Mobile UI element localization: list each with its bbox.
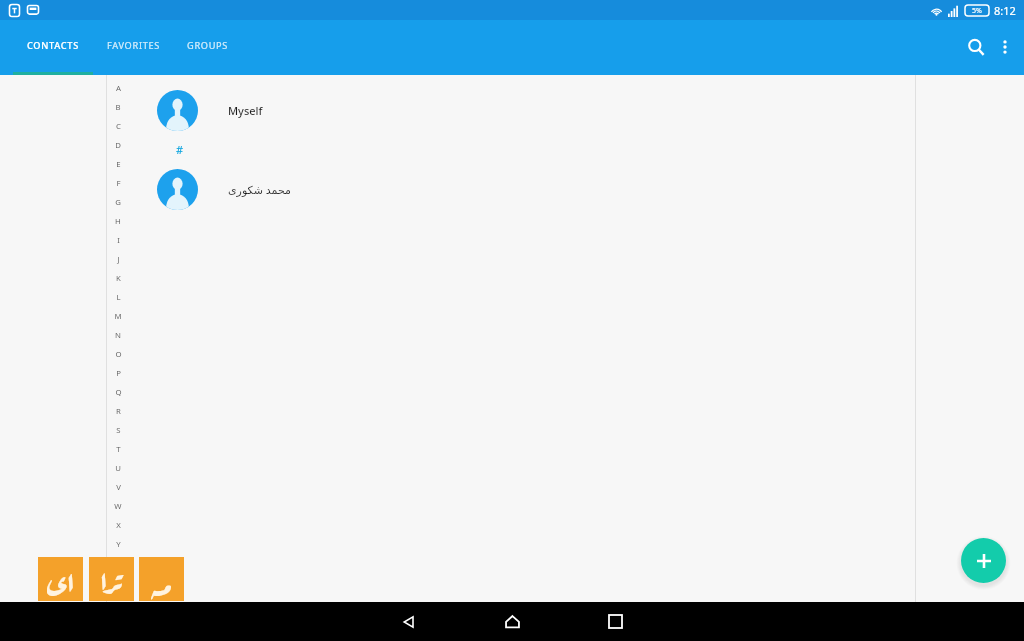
staticText: M bbox=[114, 311, 122, 322]
staticText: P bbox=[116, 368, 121, 379]
button[interactable]: S bbox=[110, 421, 126, 440]
staticText: O bbox=[115, 349, 122, 360]
button[interactable]: Q bbox=[110, 383, 126, 402]
button[interactable]: H bbox=[110, 212, 126, 231]
staticText: Q bbox=[115, 387, 122, 398]
staticText: K bbox=[116, 273, 121, 284]
staticText: ترا bbox=[100, 557, 123, 601]
button[interactable]: V bbox=[110, 478, 126, 497]
staticText: V bbox=[116, 482, 121, 493]
button[interactable]: J bbox=[110, 250, 126, 269]
button[interactable]: E bbox=[110, 155, 126, 174]
staticText: I bbox=[117, 235, 120, 246]
button[interactable]: R bbox=[110, 402, 126, 421]
staticText: FAVORITES bbox=[107, 39, 161, 52]
staticText: Myself bbox=[228, 103, 263, 118]
button[interactable]: X bbox=[110, 516, 126, 535]
button[interactable]: C bbox=[110, 117, 126, 136]
staticText: D bbox=[115, 140, 121, 151]
staticText: U bbox=[115, 463, 121, 474]
button[interactable]: FAVORITES bbox=[102, 20, 166, 75]
staticText: C bbox=[116, 121, 121, 132]
button[interactable]: Home bbox=[488, 602, 536, 641]
button[interactable]: W bbox=[110, 497, 126, 516]
button[interactable]: K bbox=[110, 269, 126, 288]
button[interactable]: T bbox=[110, 440, 126, 459]
button[interactable]: A bbox=[110, 79, 126, 98]
staticText: F bbox=[116, 178, 121, 189]
button[interactable]: Back bbox=[385, 602, 433, 641]
staticText: X bbox=[116, 520, 121, 531]
button[interactable]: N bbox=[110, 326, 126, 345]
staticText: # bbox=[176, 142, 184, 157]
staticText: محمد شکوری bbox=[228, 182, 291, 197]
staticText: A bbox=[116, 83, 121, 94]
staticText: E bbox=[116, 159, 121, 170]
button[interactable]: I bbox=[110, 231, 126, 250]
button[interactable]: G bbox=[110, 193, 126, 212]
staticText: J bbox=[117, 254, 120, 265]
staticText: B bbox=[115, 102, 121, 113]
button[interactable]: Recent apps bbox=[591, 602, 639, 641]
staticText: L bbox=[116, 292, 121, 303]
button[interactable]: CONTACTS bbox=[13, 20, 93, 75]
button[interactable]: M bbox=[110, 307, 126, 326]
staticText: CONTACTS bbox=[27, 39, 79, 52]
button[interactable]: GROUPS bbox=[180, 20, 236, 75]
button[interactable]: B bbox=[110, 98, 126, 117]
staticText: Y bbox=[116, 539, 121, 550]
staticText: N bbox=[115, 330, 121, 341]
staticText: T bbox=[116, 444, 121, 455]
staticText: مہ bbox=[151, 557, 172, 601]
staticText: H bbox=[115, 216, 121, 227]
button[interactable]: O bbox=[110, 345, 126, 364]
staticText: 8:12 bbox=[994, 3, 1016, 18]
button[interactable]: Z bbox=[110, 554, 126, 573]
button[interactable]: F bbox=[110, 174, 126, 193]
button[interactable]: L bbox=[110, 288, 126, 307]
staticText: GROUPS bbox=[187, 39, 229, 52]
staticText: G bbox=[115, 197, 121, 208]
staticText: 5% bbox=[972, 6, 982, 16]
staticText: R bbox=[116, 406, 121, 417]
button[interactable]: Y bbox=[110, 535, 126, 554]
button[interactable]: Search bbox=[960, 31, 992, 63]
button[interactable]: P bbox=[110, 364, 126, 383]
button[interactable]: Add contact bbox=[961, 538, 1006, 583]
button[interactable]: More options bbox=[989, 31, 1021, 63]
button[interactable]: محمد شکوری bbox=[107, 157, 915, 221]
button[interactable]: U bbox=[110, 459, 126, 478]
staticText: S bbox=[116, 425, 121, 436]
staticText: ای bbox=[47, 557, 75, 601]
staticText: W bbox=[114, 501, 122, 512]
button[interactable]: D bbox=[110, 136, 126, 155]
button[interactable]: Myself bbox=[107, 78, 915, 142]
